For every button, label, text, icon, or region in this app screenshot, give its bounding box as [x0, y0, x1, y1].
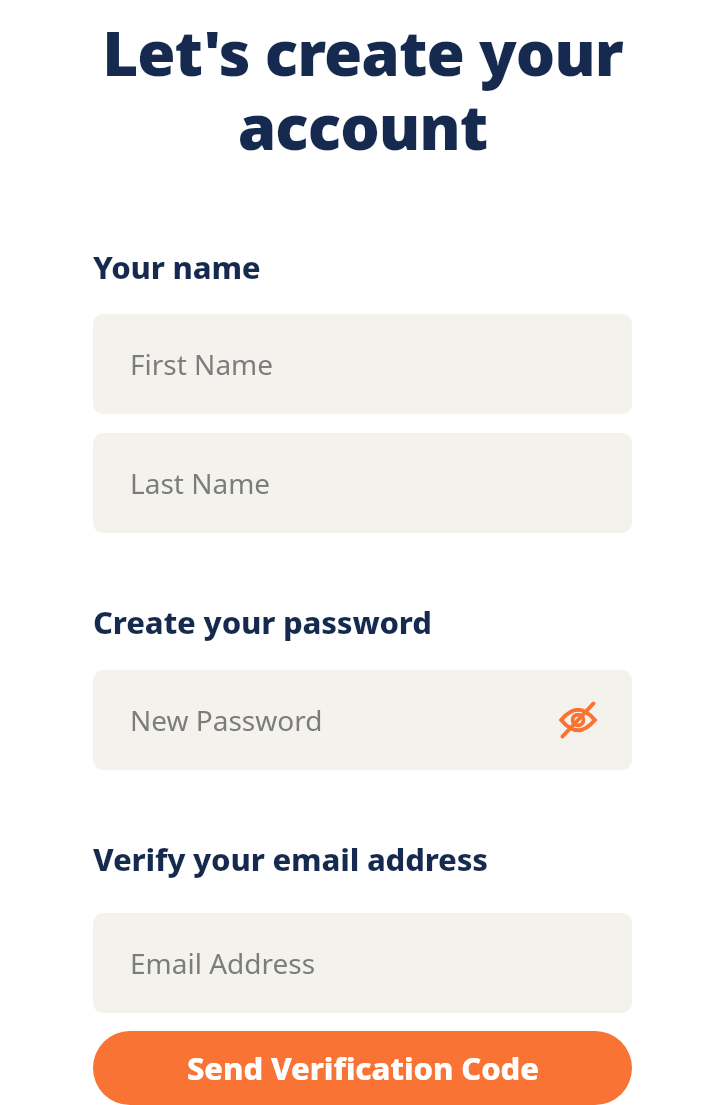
staticText: Email Address: [130, 944, 316, 982]
button[interactable]: Send Verification Code: [93, 1031, 632, 1105]
staticText: First Name: [130, 345, 274, 383]
staticText: Last Name: [130, 464, 271, 502]
staticText: New Password: [130, 701, 323, 739]
button[interactable]: First Name: [93, 314, 632, 414]
button[interactable]: Last Name: [93, 433, 632, 533]
button[interactable]: Email Address: [93, 913, 632, 1013]
button[interactable]: Show password: [554, 696, 602, 744]
button[interactable]: New Password: [93, 670, 632, 770]
staticText: Your name: [93, 246, 261, 288]
staticText: Send Verification Code: [187, 1047, 539, 1089]
staticText: Create your password: [93, 601, 432, 643]
staticText: Let's create your account: [93, 10, 632, 168]
staticText: Verify your email address: [93, 838, 488, 880]
